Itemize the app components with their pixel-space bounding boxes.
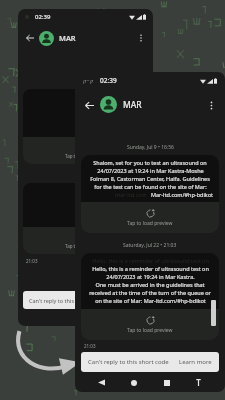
staticText: Can't reply to this short code xyxy=(88,358,169,366)
staticText: Tap to load preview xyxy=(65,153,106,159)
button[interactable]: Home xyxy=(127,376,140,389)
button[interactable]: More options xyxy=(135,32,147,44)
button[interactable]: Tap to load preview xyxy=(81,309,219,340)
button[interactable]: Recents xyxy=(160,376,173,389)
staticText: Mar-ltd.com/#hp-bdikot xyxy=(151,191,214,198)
staticText: לבדיקת אולטראסאונד xyxy=(90,93,143,100)
button[interactable]: Tap to load preview xyxy=(23,137,148,164)
staticText: Tap to load preview xyxy=(127,220,173,227)
button[interactable]: More options xyxy=(204,98,218,112)
button[interactable]: Tap to load preview xyxy=(23,227,148,254)
staticText: MAR xyxy=(123,99,142,111)
staticText: Learn more xyxy=(179,358,212,366)
staticText: on the site of Mar: Mar-ltd.com/#hp-bdik… xyxy=(95,297,206,304)
staticText: ק״ק xyxy=(83,78,94,84)
staticText: Saturday xyxy=(75,173,96,180)
button[interactable]: Keyboard xyxy=(192,376,205,389)
button[interactable]: Back xyxy=(82,98,96,112)
button[interactable]: Can't reply to this short code xyxy=(23,291,148,309)
staticText: 21:03 xyxy=(26,258,38,264)
staticText: Can't reply to this short code xyxy=(29,297,103,304)
staticText: יקת אולטראסאונד xyxy=(100,187,143,194)
staticText: Saturday, Jul 22 • 21:03 xyxy=(123,242,177,249)
button[interactable]: Hello, this is a reminder of ultrasound … xyxy=(81,253,219,309)
staticText: שעה 19:24 במאר xyxy=(101,195,143,202)
button[interactable]: לבדיקת אולטראסאונד xyxy=(23,89,148,137)
staticText: קסטרא, מרכז 8, ח xyxy=(99,109,143,116)
button[interactable]: Shalom, set for you to test an ultrasoun… xyxy=(81,155,219,202)
staticText: received at the time of the turn of the … xyxy=(89,289,211,296)
staticText: Hello, this is a reminder of ultrasound … xyxy=(92,265,209,272)
staticText: Tap to load preview xyxy=(65,243,106,249)
staticText: מאר: mar-ltd.com/ xyxy=(95,215,143,222)
staticText: 24/07/2023 at 19:24 in Mar Kastra. xyxy=(106,273,195,280)
button[interactable]: Tap to load preview xyxy=(81,202,219,233)
staticText: Sunday, Jul 9 • 16:56 xyxy=(127,144,174,151)
staticText: MAR xyxy=(59,33,76,43)
button[interactable]: Back xyxy=(95,376,108,389)
staticText: 24/07/2023 at 19:24 in Mar Kastra-Moshe xyxy=(97,167,204,174)
button[interactable]: יקת אולטראסאונד xyxy=(23,183,148,227)
staticText: Sunday xyxy=(77,79,95,86)
staticText: שעה 19:24 במאר xyxy=(101,101,143,108)
staticText: Tap to load preview xyxy=(127,327,173,334)
button[interactable]: Can't reply to this short code xyxy=(81,352,219,372)
staticText: for the test can be found on the site of… xyxy=(94,183,207,190)
staticText: Hello, this is a reminder of ultrasound … xyxy=(92,257,209,264)
staticText: Foiman 8, Castorman Center, Haifa. Guide… xyxy=(90,175,210,182)
staticText: 02:39 xyxy=(100,76,117,85)
staticText: One must be arrived in the guidelines th… xyxy=(95,281,205,288)
staticText: Shalom, set for you to test an ultrasoun… xyxy=(93,159,207,166)
button[interactable]: Back xyxy=(24,32,36,44)
staticText: 02:39 xyxy=(35,13,51,21)
staticText: mar-ltd.com xyxy=(115,191,147,198)
staticText: 21:03 xyxy=(84,343,96,349)
